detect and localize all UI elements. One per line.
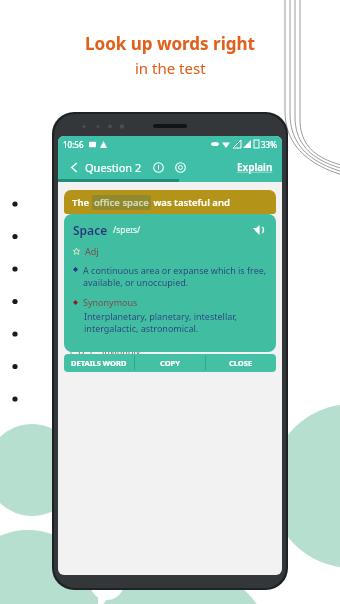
staticText: D — [78, 345, 85, 357]
staticText: COPY — [160, 358, 180, 368]
staticText: Question 2 — [85, 160, 142, 175]
staticText: Interplanetary, planetary, intestellar, … — [84, 310, 267, 335]
button[interactable]: Play pronunciation — [251, 222, 267, 238]
staticText: The — [72, 196, 92, 209]
staticText: DETAILS WORD — [71, 358, 127, 368]
staticText: Synonymous — [83, 296, 138, 308]
staticText: was tasteful and — [151, 196, 230, 209]
staticText: Look up words right — [85, 32, 255, 55]
staticText: Explain — [237, 160, 273, 174]
button[interactable]: COPY — [135, 354, 205, 372]
button[interactable]: Explain — [235, 160, 275, 174]
button[interactable]: Settings — [172, 159, 188, 175]
staticText: office space — [94, 196, 149, 209]
button[interactable]: CLOSE — [206, 354, 276, 372]
staticText: Space — [73, 222, 108, 238]
staticText: 33% — [261, 139, 277, 150]
staticText: invitingly — [102, 345, 141, 357]
button[interactable]: office space — [94, 196, 149, 209]
staticText: 10:56 — [63, 139, 84, 150]
button[interactable]: Info — [150, 159, 166, 175]
staticText: Adj — [85, 245, 99, 257]
button[interactable]: DETAILS WORD — [64, 354, 134, 372]
button[interactable]: Back — [65, 158, 83, 176]
staticText: in the test — [135, 58, 206, 78]
staticText: CLOSE — [229, 358, 253, 368]
staticText: /speɪs/ — [113, 224, 141, 236]
staticText: A continuous area or expanse which is fr… — [83, 264, 267, 289]
